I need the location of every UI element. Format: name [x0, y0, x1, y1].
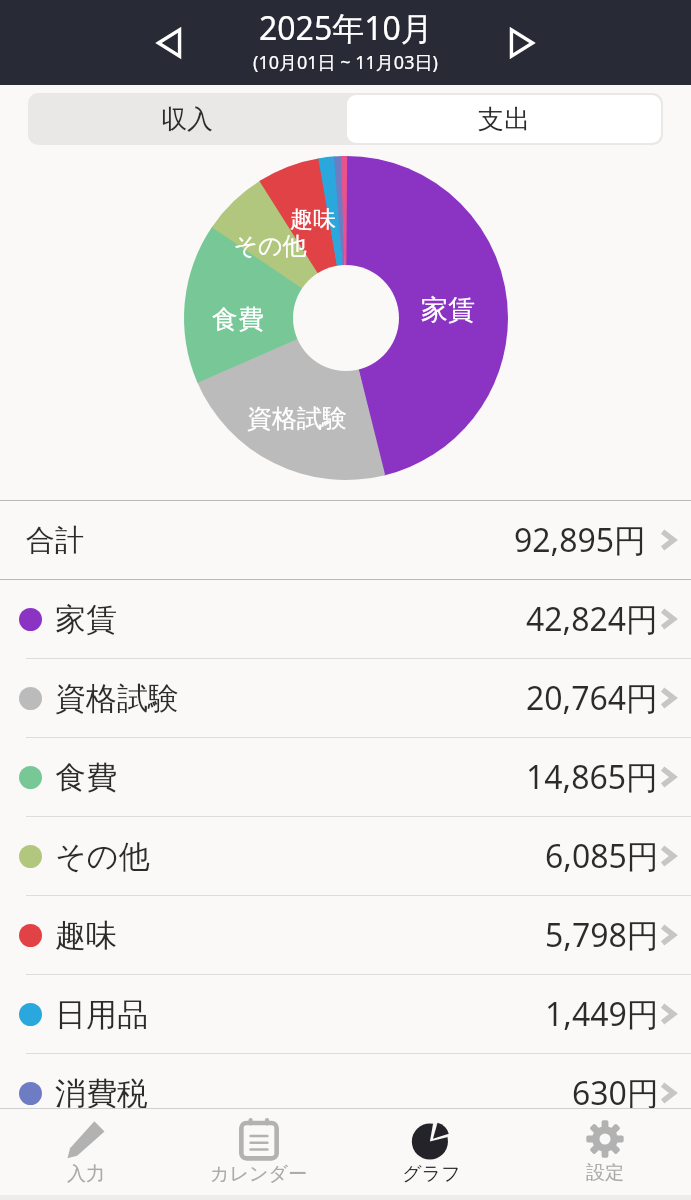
button[interactable]: 合計: [0, 501, 691, 579]
button[interactable]: 家賃: [0, 580, 691, 658]
staticText: 食費: [55, 758, 117, 797]
staticText: 20,764円: [526, 676, 659, 720]
staticText: 92,895円: [514, 518, 647, 562]
staticText: 5,798円: [545, 913, 659, 957]
staticText: 趣味: [55, 916, 117, 955]
staticText: グラフ: [402, 1162, 461, 1186]
staticText: 14,865円: [526, 755, 659, 799]
button[interactable]: 消費税: [0, 1054, 691, 1132]
button[interactable]: 支出: [347, 95, 661, 143]
button[interactable]: Previous month: [141, 15, 197, 71]
staticText: 日用品: [55, 995, 148, 1034]
staticText: 支出: [478, 103, 530, 136]
staticText: 630円: [572, 1071, 659, 1115]
button[interactable]: 日用品: [0, 975, 691, 1053]
button[interactable]: その他: [0, 817, 691, 895]
button[interactable]: 趣味: [0, 896, 691, 974]
staticText: 家賃: [55, 600, 117, 639]
button[interactable]: 入力: [0, 1109, 172, 1195]
staticText: 家賃: [421, 293, 475, 327]
staticText: 6,085円: [545, 834, 659, 878]
button[interactable]: 資格試験: [0, 659, 691, 737]
staticText: カレンダー: [210, 1162, 307, 1186]
staticText: 合計: [26, 522, 84, 559]
staticText: 1,449円: [545, 992, 659, 1036]
staticText: 消費税: [55, 1074, 148, 1113]
button[interactable]: グラフ: [345, 1109, 518, 1195]
staticText: (10月01日 ~ 11月03日): [253, 50, 438, 75]
staticText: 設定: [586, 1161, 624, 1185]
staticText: 42,824円: [526, 597, 659, 641]
button[interactable]: Next month: [494, 15, 550, 71]
staticText: その他: [55, 837, 150, 876]
button[interactable]: 設定: [518, 1109, 691, 1195]
staticText: 資格試験: [55, 679, 179, 718]
staticText: その他: [233, 231, 307, 261]
button[interactable]: カレンダー: [172, 1109, 345, 1195]
staticText: 入力: [67, 1162, 105, 1186]
staticText: 食費: [212, 303, 264, 336]
staticText: 資格試験: [247, 403, 347, 434]
staticText: 趣味: [290, 205, 336, 234]
staticText: 2025年10月: [259, 6, 433, 50]
button[interactable]: 収入: [28, 93, 345, 145]
button[interactable]: 食費: [0, 738, 691, 816]
staticText: 収入: [161, 103, 213, 136]
